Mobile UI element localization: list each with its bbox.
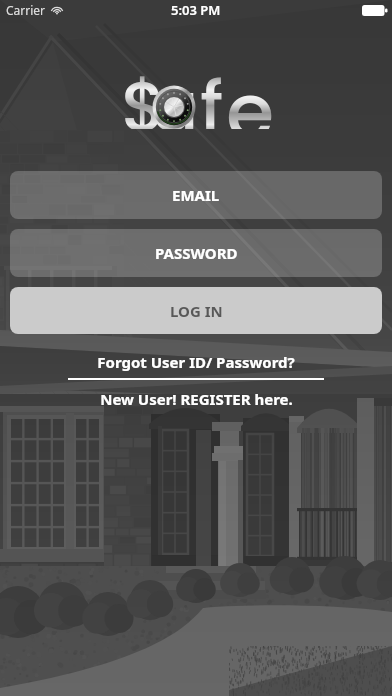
button[interactable]: LOG IN: [10, 287, 382, 334]
staticText: e: [226, 57, 275, 129]
staticText: PASSWORD: [155, 243, 238, 263]
staticText: a: [151, 57, 199, 129]
button[interactable]: New User! REGISTER here.: [0, 389, 392, 409]
staticText: EMAIL: [172, 185, 220, 205]
button[interactable]: EMAIL: [10, 171, 382, 219]
staticText: Carrier: [6, 2, 46, 18]
staticText: 5:03 PM: [171, 1, 221, 19]
button[interactable]: PASSWORD: [10, 229, 382, 277]
button[interactable]: Forgot User ID/ Password?: [0, 352, 392, 372]
staticText: Forgot User ID/ Password?: [97, 352, 295, 372]
staticText: f: [200, 57, 224, 129]
staticText: New User! REGISTER here.: [100, 389, 293, 409]
staticText: $: [121, 57, 167, 129]
staticText: LOG IN: [170, 301, 223, 321]
